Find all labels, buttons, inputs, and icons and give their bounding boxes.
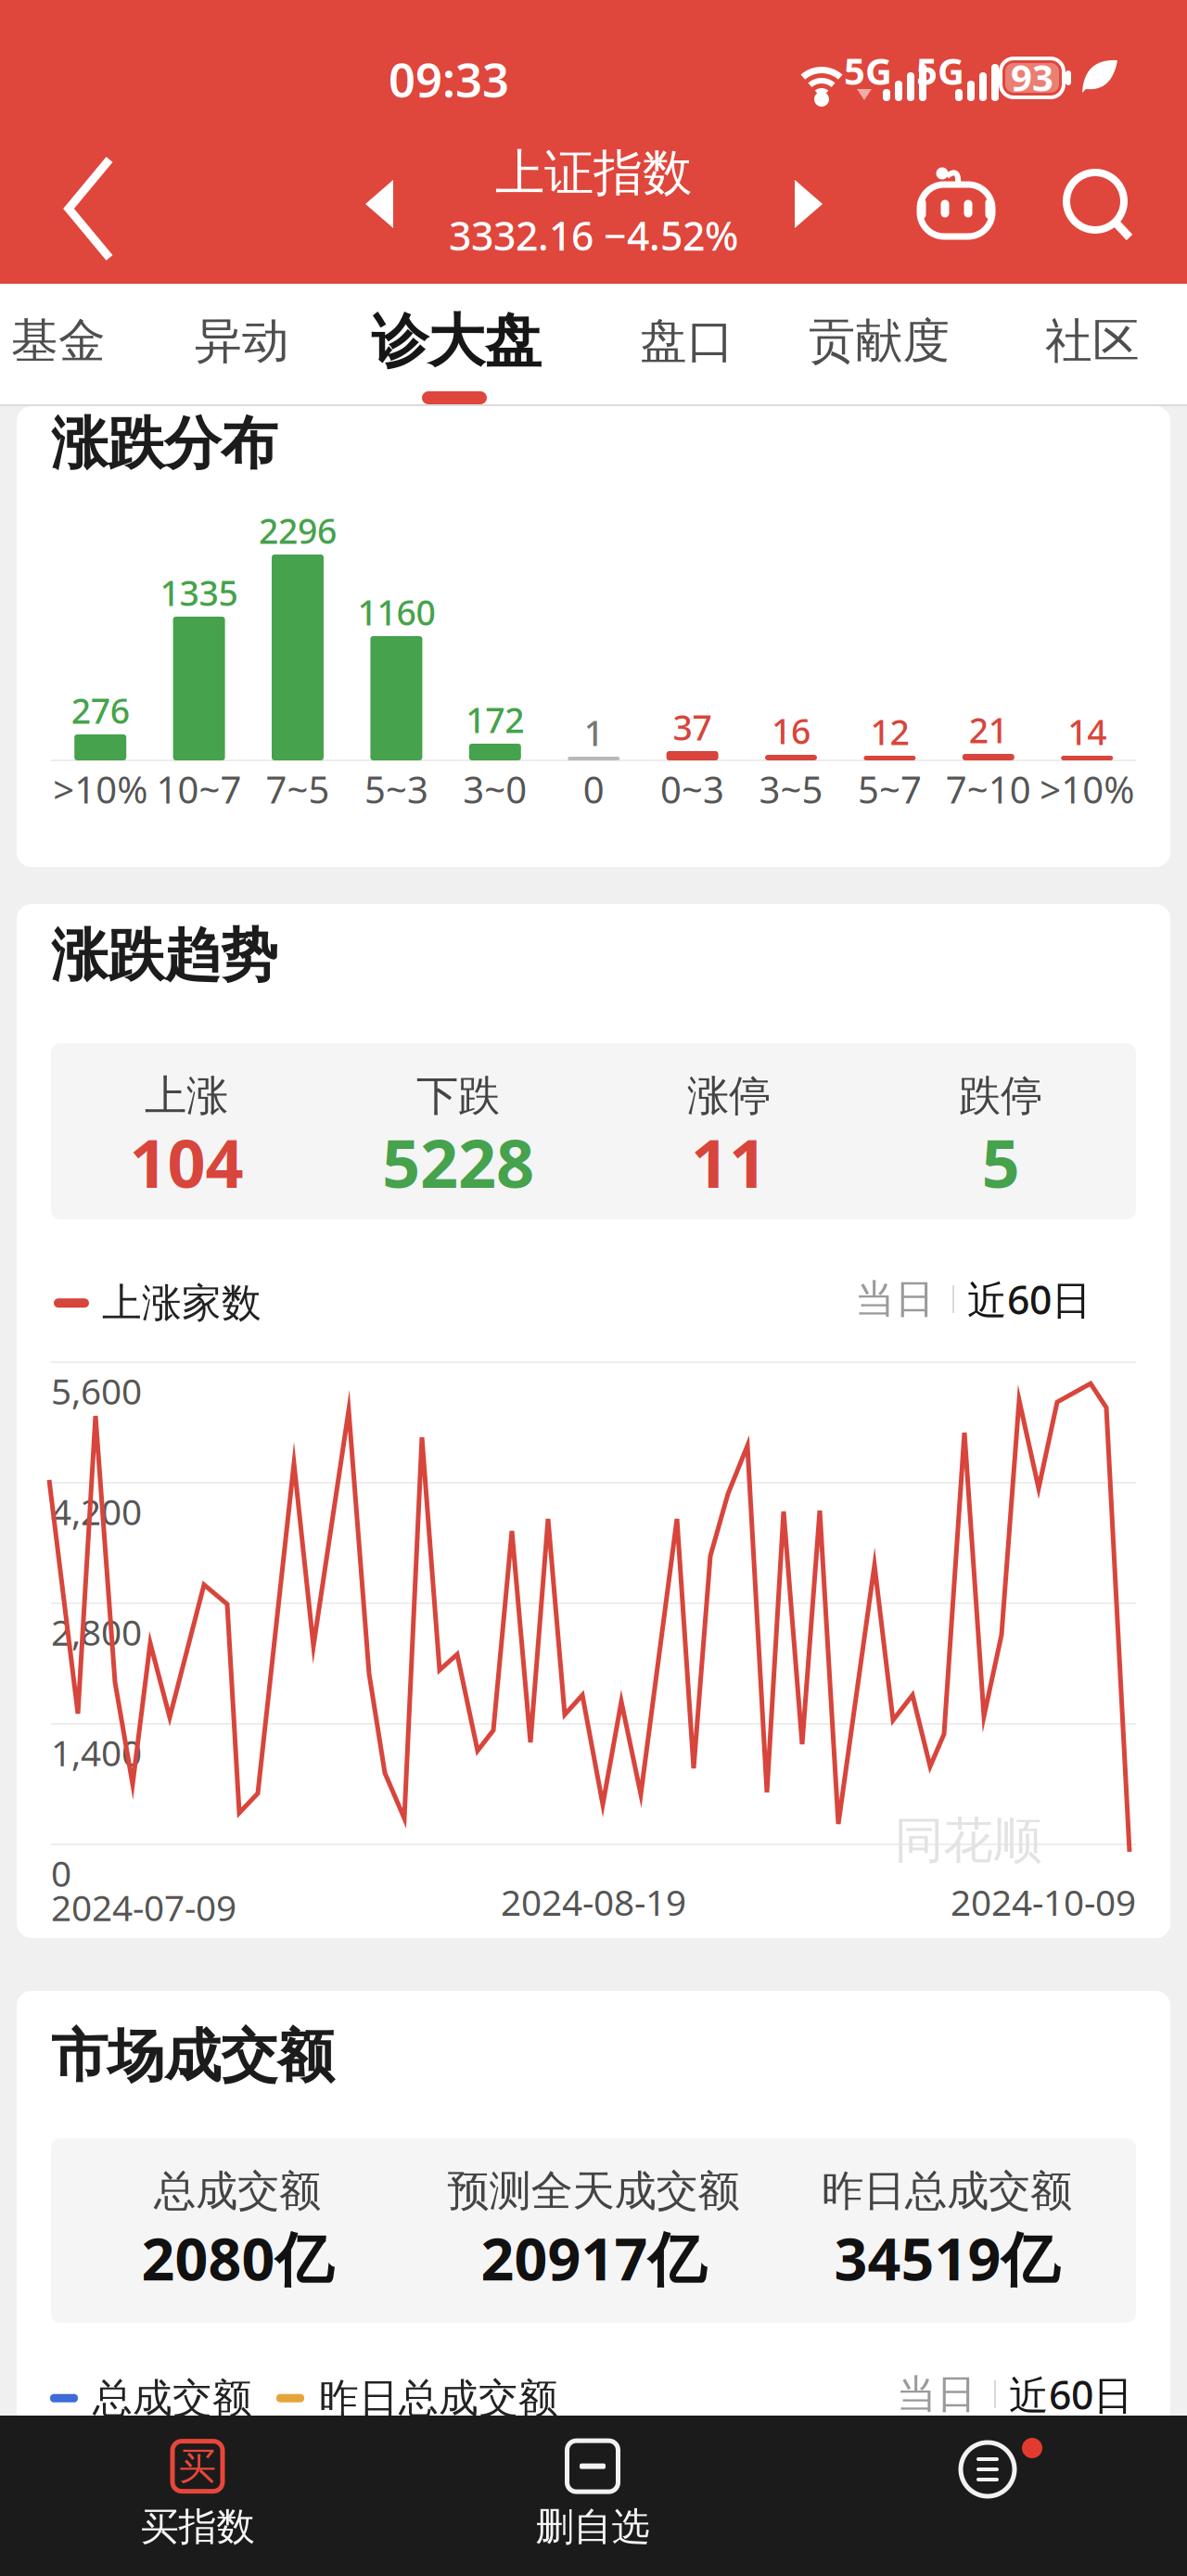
button[interactable]: 贡献度: [808, 312, 950, 370]
staticText: 14: [1068, 709, 1107, 755]
button[interactable]: Next index: [795, 180, 823, 228]
staticText: 20917亿: [481, 2219, 706, 2297]
staticText: 总成交额: [154, 2165, 321, 2217]
staticText: 1160: [357, 589, 435, 635]
staticText: 104: [129, 1118, 243, 1206]
staticText: 上涨: [145, 1070, 228, 1122]
staticText: 93: [1011, 52, 1053, 102]
button[interactable]: 盘口: [640, 312, 734, 370]
staticText: 0: [51, 1849, 71, 1897]
button[interactable]: 买: [140, 2438, 255, 2550]
staticText: 1: [584, 710, 603, 756]
button[interactable]: 社区: [1045, 312, 1140, 370]
button[interactable]: 异动: [195, 312, 289, 370]
staticText: 涨停: [687, 1070, 771, 1122]
staticText: 1,400: [51, 1728, 142, 1776]
staticText: 09:33: [389, 48, 509, 110]
staticText: 5228: [382, 1118, 534, 1206]
staticText: 盘口: [640, 312, 734, 370]
staticText: 2024-07-09: [51, 1883, 236, 1931]
staticText: 7~10: [946, 764, 1031, 814]
button[interactable]: Search: [1058, 160, 1142, 262]
staticText: 21: [969, 707, 1008, 753]
staticText: 11: [691, 1118, 767, 1206]
button[interactable]: 近60日: [967, 1273, 1091, 1325]
button[interactable]: AI assistant: [910, 164, 1002, 257]
staticText: 涨跌趋势: [51, 921, 277, 991]
staticText: 276: [71, 687, 130, 733]
staticText: 预测全天成交额: [447, 2165, 740, 2217]
staticText: 4,200: [51, 1487, 142, 1535]
staticText: 3332.16 −4.52%: [449, 209, 738, 262]
staticText: 5~7: [858, 764, 922, 814]
staticText: >10%: [1040, 764, 1134, 814]
staticText: 当日: [855, 1275, 935, 1323]
staticText: 2080亿: [141, 2219, 333, 2297]
button[interactable]: 总成交额: [50, 2374, 252, 2422]
staticText: 34519亿: [834, 2219, 1059, 2297]
staticText: 市场成交额: [51, 2021, 334, 2091]
staticText: 涨跌分布: [51, 409, 277, 479]
staticText: 上涨家数: [102, 1279, 262, 1327]
staticText: 社区: [1045, 312, 1140, 370]
staticText: 1335: [160, 570, 238, 616]
staticText: >10%: [53, 764, 148, 814]
staticText: 0~3: [660, 764, 724, 814]
staticText: 近60日: [1009, 2368, 1133, 2421]
button[interactable]: Previous index: [365, 180, 393, 228]
staticText: 删自选: [536, 2503, 650, 2550]
button[interactable]: More: [958, 2440, 1017, 2499]
button[interactable]: Back: [61, 156, 117, 261]
staticText: 异动: [195, 312, 289, 370]
staticText: 2,800: [51, 1608, 142, 1655]
staticText: 12: [870, 709, 909, 755]
staticText: 昨日总成交额: [822, 2165, 1072, 2217]
staticText: 买: [179, 2443, 216, 2489]
staticText: 近60日: [967, 1273, 1091, 1325]
staticText: 下跌: [416, 1070, 500, 1122]
staticText: 16: [772, 708, 810, 754]
staticText: 贡献度: [808, 312, 950, 370]
staticText: 10~7: [156, 764, 242, 814]
staticText: 5,600: [51, 1367, 142, 1414]
button[interactable]: 近60日: [1009, 2368, 1133, 2421]
staticText: 0: [583, 764, 604, 814]
staticText: 跌停: [959, 1070, 1042, 1122]
button[interactable]: 基金: [11, 312, 106, 370]
staticText: 5G: [916, 46, 964, 95]
staticText: 5G: [844, 46, 892, 95]
staticText: 5: [982, 1118, 1020, 1206]
staticText: 基金: [11, 312, 106, 370]
staticText: 2296: [259, 507, 337, 553]
staticText: 7~5: [266, 764, 330, 814]
button[interactable]: 上涨家数: [54, 1279, 262, 1327]
staticText: 3~0: [463, 764, 527, 814]
staticText: 总成交额: [93, 2374, 252, 2422]
staticText: 昨日总成交额: [319, 2374, 558, 2422]
button[interactable]: 当日: [897, 2370, 976, 2419]
staticText: 买指数: [140, 2503, 255, 2550]
button[interactable]: 删自选: [536, 2438, 650, 2550]
staticText: 上证指数: [495, 143, 692, 203]
staticText: 37: [673, 704, 712, 750]
staticText: 5~3: [364, 764, 428, 814]
staticText: 3~5: [759, 764, 823, 814]
staticText: 2024-08-19: [501, 1878, 686, 1926]
staticText: 当日: [897, 2370, 976, 2419]
staticText: 172: [466, 697, 524, 743]
button[interactable]: 当日: [855, 1275, 935, 1323]
staticText: 2024-10-09: [951, 1878, 1136, 1926]
staticText: 诊大盘: [371, 306, 541, 376]
button[interactable]: 昨日总成交额: [276, 2374, 558, 2422]
button[interactable]: 诊大盘: [371, 306, 541, 376]
staticText: 同花顺: [894, 1810, 1042, 1871]
